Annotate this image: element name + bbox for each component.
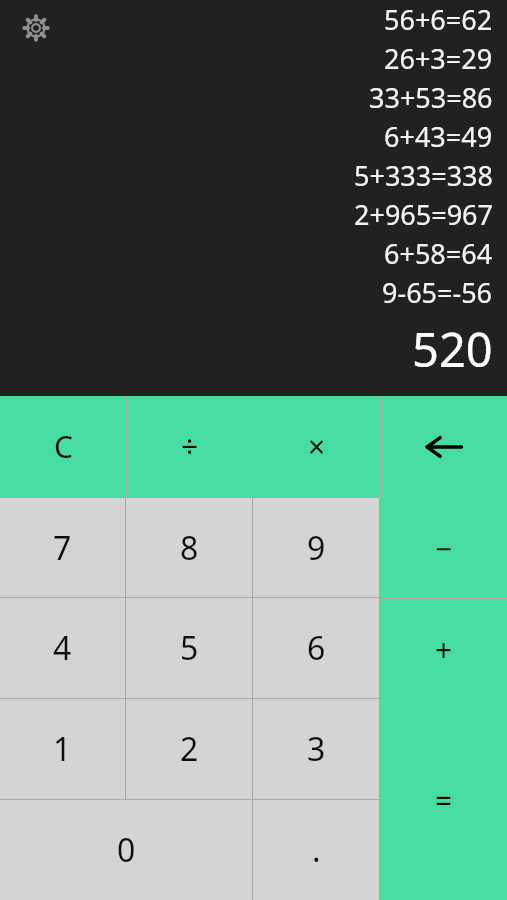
staticText: . — [312, 828, 321, 872]
button[interactable]: × — [254, 396, 380, 497]
staticText: 8 — [180, 526, 199, 570]
button[interactable]: 7 — [0, 498, 125, 597]
staticText: 1 — [53, 727, 72, 771]
button[interactable]: 6 — [253, 598, 379, 698]
staticText: 7 — [53, 526, 72, 570]
button[interactable]: = — [380, 700, 507, 900]
button[interactable]: − — [380, 498, 507, 598]
button[interactable]: C — [0, 396, 126, 497]
staticText: × — [308, 426, 326, 467]
staticText: = — [435, 780, 453, 821]
button[interactable]: . — [253, 800, 379, 900]
staticText: 3 — [307, 727, 326, 771]
button[interactable]: 3 — [253, 699, 379, 799]
staticText: 9-65=-56 — [382, 274, 493, 311]
staticText: 56+6=62 — [384, 1, 493, 38]
staticText: 520 — [412, 317, 493, 381]
button[interactable]: 4 — [0, 598, 125, 698]
staticText: 26+3=29 — [384, 40, 493, 77]
staticText: 33+53=86 — [369, 79, 493, 116]
staticText: − — [435, 528, 453, 569]
button[interactable]: 1 — [0, 699, 125, 799]
button[interactable]: 0 — [0, 800, 252, 900]
staticText: 0 — [117, 828, 136, 872]
staticText: 2 — [180, 727, 199, 771]
button[interactable]: Settings — [12, 4, 60, 52]
button[interactable]: 2 — [126, 699, 252, 799]
staticText: 5 — [180, 626, 199, 670]
button[interactable]: 9 — [253, 498, 379, 597]
button[interactable]: Backspace — [381, 396, 507, 497]
staticText: 6+43=49 — [384, 118, 493, 155]
button[interactable]: 8 — [126, 498, 252, 597]
staticText: 2+965=967 — [354, 196, 493, 233]
staticText: 6+58=64 — [384, 235, 493, 272]
button[interactable]: + — [380, 599, 507, 699]
staticText: + — [435, 629, 453, 670]
staticText: 5+333=338 — [354, 157, 493, 194]
button[interactable]: 5 — [126, 598, 252, 698]
staticText: ÷ — [181, 426, 199, 467]
staticText: C — [54, 426, 73, 467]
staticText: 9 — [307, 526, 326, 570]
staticText: 4 — [53, 626, 72, 670]
button[interactable]: ÷ — [127, 396, 253, 497]
staticText: 6 — [307, 626, 326, 670]
